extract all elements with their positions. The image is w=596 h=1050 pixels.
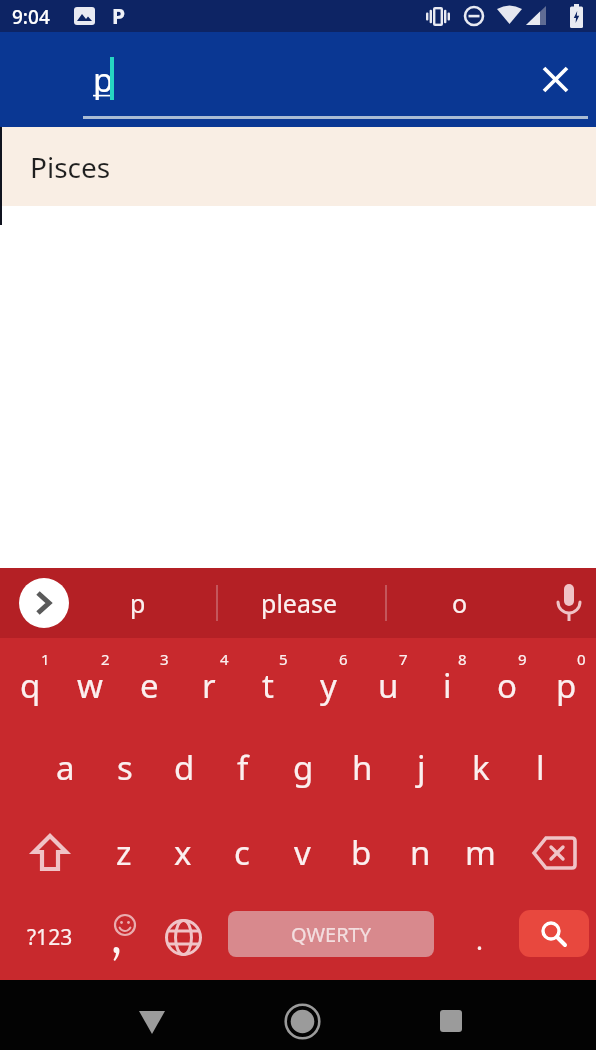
staticText: .: [476, 922, 483, 957]
button[interactable]: [531, 55, 579, 103]
staticText: Pisces: [30, 148, 111, 186]
button[interactable]: [514, 810, 594, 895]
button[interactable]: [96, 895, 150, 980]
button[interactable]: n: [390, 810, 450, 895]
button[interactable]: w: [60, 638, 120, 724]
staticText: t: [262, 663, 274, 708]
button[interactable]: r: [179, 638, 239, 724]
staticText: P: [112, 2, 126, 31]
staticText: x: [174, 830, 192, 875]
button[interactable]: o: [477, 638, 537, 724]
button[interactable]: b: [331, 810, 391, 895]
staticText: e: [140, 663, 159, 708]
button[interactable]: [122, 992, 182, 1050]
button[interactable]: j: [391, 724, 451, 810]
button[interactable]: [10, 810, 90, 895]
staticText: d: [174, 745, 195, 790]
button[interactable]: f: [213, 724, 273, 810]
staticText: l: [536, 745, 545, 790]
button[interactable]: h: [332, 724, 392, 810]
staticText: w: [77, 663, 103, 708]
staticText: p: [93, 57, 114, 102]
staticText: n: [410, 830, 431, 875]
staticText: p: [130, 586, 146, 620]
staticText: i: [443, 663, 452, 708]
button[interactable]: [421, 991, 481, 1050]
staticText: f: [237, 745, 249, 790]
button[interactable]: [19, 578, 69, 628]
button[interactable]: x: [153, 810, 213, 895]
staticText: z: [116, 830, 132, 875]
button[interactable]: d: [154, 724, 214, 810]
staticText: 1: [41, 649, 50, 669]
staticText: r: [202, 663, 216, 708]
staticText: o: [452, 586, 468, 620]
staticText: a: [56, 745, 75, 790]
staticText: 3: [160, 649, 169, 669]
button[interactable]: [548, 582, 590, 624]
staticText: QWERTY: [291, 921, 372, 948]
button[interactable]: m: [450, 810, 510, 895]
staticText: j: [417, 745, 426, 790]
button[interactable]: a: [35, 724, 95, 810]
button[interactable]: z: [94, 810, 154, 895]
button[interactable]: .: [450, 895, 508, 980]
button[interactable]: u: [358, 638, 418, 724]
staticText: q: [20, 663, 41, 708]
button[interactable]: k: [451, 724, 511, 810]
staticText: h: [352, 745, 373, 790]
button[interactable]: ?123: [12, 895, 88, 980]
button[interactable]: q: [0, 638, 60, 724]
button[interactable]: s: [95, 724, 155, 810]
button[interactable]: Pisces: [0, 127, 596, 206]
staticText: 5: [279, 649, 288, 669]
staticText: y: [320, 663, 337, 708]
staticText: k: [472, 745, 490, 790]
button[interactable]: y: [298, 638, 358, 724]
button[interactable]: o: [426, 568, 494, 638]
button[interactable]: c: [212, 810, 272, 895]
staticText: 0: [577, 649, 586, 669]
staticText: 7: [399, 649, 408, 669]
staticText: 8: [458, 649, 467, 669]
button[interactable]: v: [272, 810, 332, 895]
button[interactable]: p: [104, 568, 172, 638]
button[interactable]: i: [417, 638, 477, 724]
staticText: m: [465, 830, 496, 875]
staticText: s: [117, 745, 133, 790]
staticText: u: [378, 663, 399, 708]
staticText: ?123: [27, 923, 73, 952]
button[interactable]: [272, 991, 332, 1050]
button[interactable]: please: [234, 568, 364, 638]
staticText: 9: [518, 649, 527, 669]
staticText: b: [351, 830, 372, 875]
staticText: 9:04: [12, 4, 50, 30]
button[interactable]: e: [119, 638, 179, 724]
button[interactable]: g: [273, 724, 333, 810]
staticText: 6: [339, 649, 348, 669]
staticText: p: [556, 663, 577, 708]
staticText: v: [294, 830, 311, 875]
staticText: o: [497, 663, 517, 708]
staticText: c: [234, 830, 250, 875]
staticText: 2: [101, 649, 110, 669]
staticText: please: [261, 586, 338, 620]
button[interactable]: QWERTY: [228, 911, 434, 957]
staticText: g: [293, 745, 314, 790]
button[interactable]: t: [238, 638, 298, 724]
button[interactable]: p: [536, 638, 596, 724]
button[interactable]: [153, 895, 213, 980]
staticText: 4: [220, 649, 229, 669]
button[interactable]: l: [510, 724, 570, 810]
button[interactable]: [519, 910, 589, 957]
